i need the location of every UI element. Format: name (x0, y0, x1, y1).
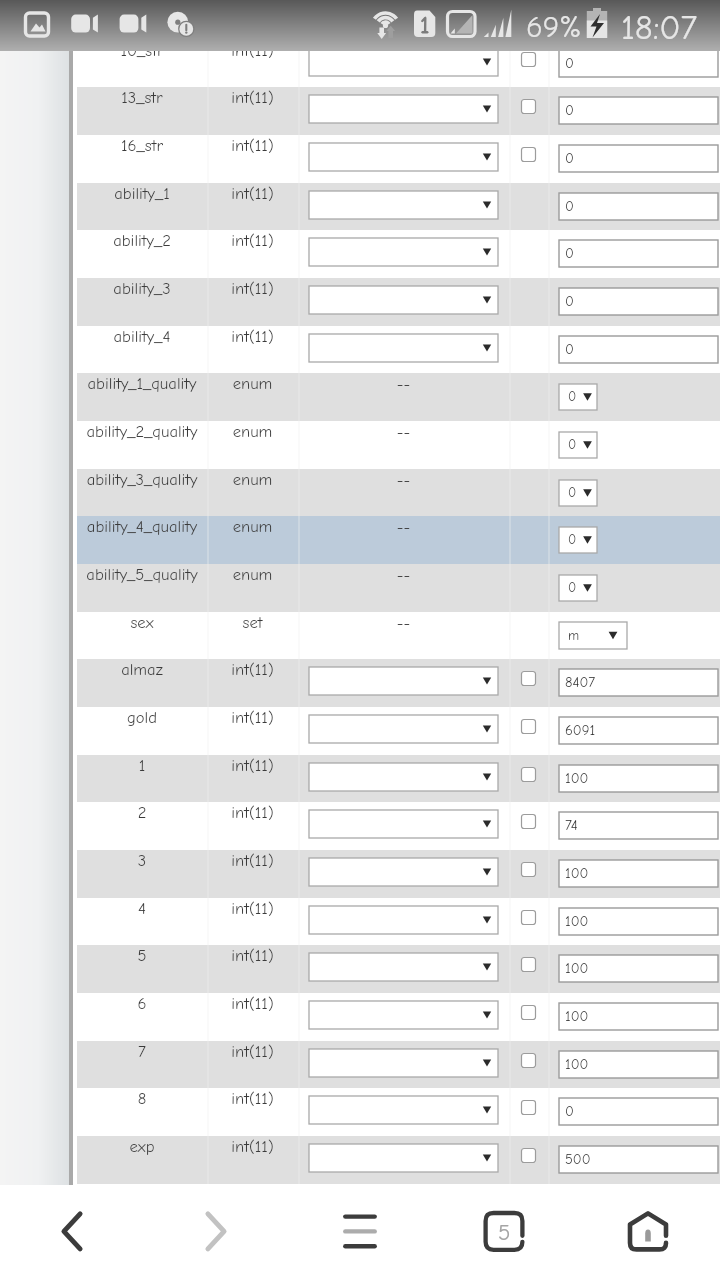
button[interactable] (521, 957, 536, 972)
button[interactable] (521, 671, 536, 686)
button[interactable]: 13_str (77, 87, 720, 135)
button[interactable] (309, 1096, 498, 1124)
button[interactable]: 5 (77, 945, 720, 993)
button[interactable]: 500 (559, 1146, 718, 1173)
button[interactable]: 8 (77, 1088, 720, 1136)
button[interactable]: 0 (559, 575, 597, 601)
staticText: int(11) (207, 899, 298, 918)
button[interactable]: 0 (559, 384, 597, 410)
button[interactable] (309, 334, 498, 362)
button[interactable] (309, 1001, 498, 1029)
staticText: ability_1 (77, 184, 207, 203)
button[interactable]: 6091 (559, 717, 718, 744)
button[interactable]: Menu (288, 1185, 432, 1280)
button[interactable] (309, 953, 498, 981)
button[interactable]: 0 (559, 527, 597, 553)
button[interactable]: gold (77, 707, 720, 755)
button[interactable]: 100 (559, 955, 718, 982)
button[interactable]: 4 (77, 898, 720, 946)
button[interactable] (309, 1049, 498, 1077)
staticText: int(11) (207, 708, 298, 727)
button[interactable] (521, 767, 536, 782)
button[interactable]: 0 (559, 50, 718, 77)
button[interactable]: ability_5_quality (77, 564, 720, 612)
button[interactable]: 16_str (77, 135, 720, 183)
button[interactable] (521, 719, 536, 734)
button[interactable]: Back (0, 1185, 144, 1280)
button[interactable]: 0 (559, 1098, 718, 1125)
button[interactable]: 0 (559, 145, 718, 172)
button[interactable]: m (559, 622, 627, 649)
button[interactable] (521, 862, 536, 877)
button[interactable] (521, 1100, 536, 1115)
button[interactable]: 3 (77, 850, 720, 898)
button[interactable]: 100 (559, 908, 718, 935)
button[interactable] (309, 667, 498, 695)
staticText: 0 (565, 102, 574, 119)
button[interactable]: ability_3 (77, 278, 720, 326)
staticText: 3 (77, 851, 207, 870)
staticText: 100 (565, 913, 589, 930)
button[interactable]: 100 (559, 1003, 718, 1030)
staticText: 0 (565, 55, 574, 72)
button[interactable]: 74 (559, 812, 718, 839)
button[interactable] (521, 52, 536, 67)
button[interactable] (309, 191, 498, 219)
button[interactable]: 1 (77, 755, 720, 803)
staticText: -- (298, 517, 509, 536)
button[interactable] (309, 238, 498, 266)
button[interactable] (309, 48, 498, 76)
button[interactable]: ability_2 (77, 230, 720, 278)
button[interactable] (521, 910, 536, 925)
button[interactable]: ability_4_quality (77, 516, 720, 564)
button[interactable]: 0 (559, 240, 718, 267)
button[interactable]: Forward (144, 1185, 288, 1280)
button[interactable]: ability_4 (77, 326, 720, 374)
button[interactable] (309, 286, 498, 314)
staticText: int(11) (207, 327, 298, 346)
button[interactable]: sex (77, 612, 720, 660)
staticText: ability_3_quality (77, 470, 207, 489)
button[interactable]: 8407 (559, 669, 718, 696)
button[interactable]: 0 (559, 193, 718, 220)
button[interactable]: 100 (559, 860, 718, 887)
button[interactable]: ability_1_quality (77, 373, 720, 421)
button[interactable] (309, 1144, 498, 1172)
button[interactable] (521, 1005, 536, 1020)
button[interactable]: ability_2_quality (77, 421, 720, 469)
button[interactable]: 0 (559, 288, 718, 315)
button[interactable]: almaz (77, 659, 720, 707)
button[interactable] (309, 906, 498, 934)
staticText: 5 (77, 946, 207, 965)
button[interactable] (309, 143, 498, 171)
staticText: 0 (565, 293, 574, 310)
button[interactable] (521, 1053, 536, 1068)
button[interactable]: 2 (77, 802, 720, 850)
button[interactable] (521, 814, 536, 829)
button[interactable]: 6 (77, 993, 720, 1041)
staticText: sex (77, 613, 207, 632)
button[interactable]: 0 (559, 432, 597, 458)
button[interactable]: 0 (559, 97, 718, 124)
button[interactable]: exp (77, 1136, 720, 1184)
button[interactable]: 100 (559, 765, 718, 792)
button[interactable] (309, 763, 498, 791)
button[interactable]: ability_1 (77, 183, 720, 231)
staticText: 0 (565, 1103, 574, 1120)
button[interactable] (309, 715, 498, 743)
button[interactable]: Home (576, 1185, 720, 1280)
button[interactable]: 100 (559, 1051, 718, 1078)
button[interactable]: 10_str (77, 40, 720, 88)
button[interactable] (521, 147, 536, 162)
button[interactable] (309, 95, 498, 123)
button[interactable]: ability_3_quality (77, 469, 720, 517)
button[interactable]: 0 (559, 480, 597, 506)
button[interactable] (521, 1148, 536, 1163)
button[interactable]: 0 (559, 336, 718, 363)
staticText: int(11) (207, 994, 298, 1013)
button[interactable] (309, 810, 498, 838)
button[interactable] (309, 858, 498, 886)
button[interactable]: Tabs (432, 1185, 576, 1280)
button[interactable]: 7 (77, 1041, 720, 1089)
button[interactable] (521, 99, 536, 114)
